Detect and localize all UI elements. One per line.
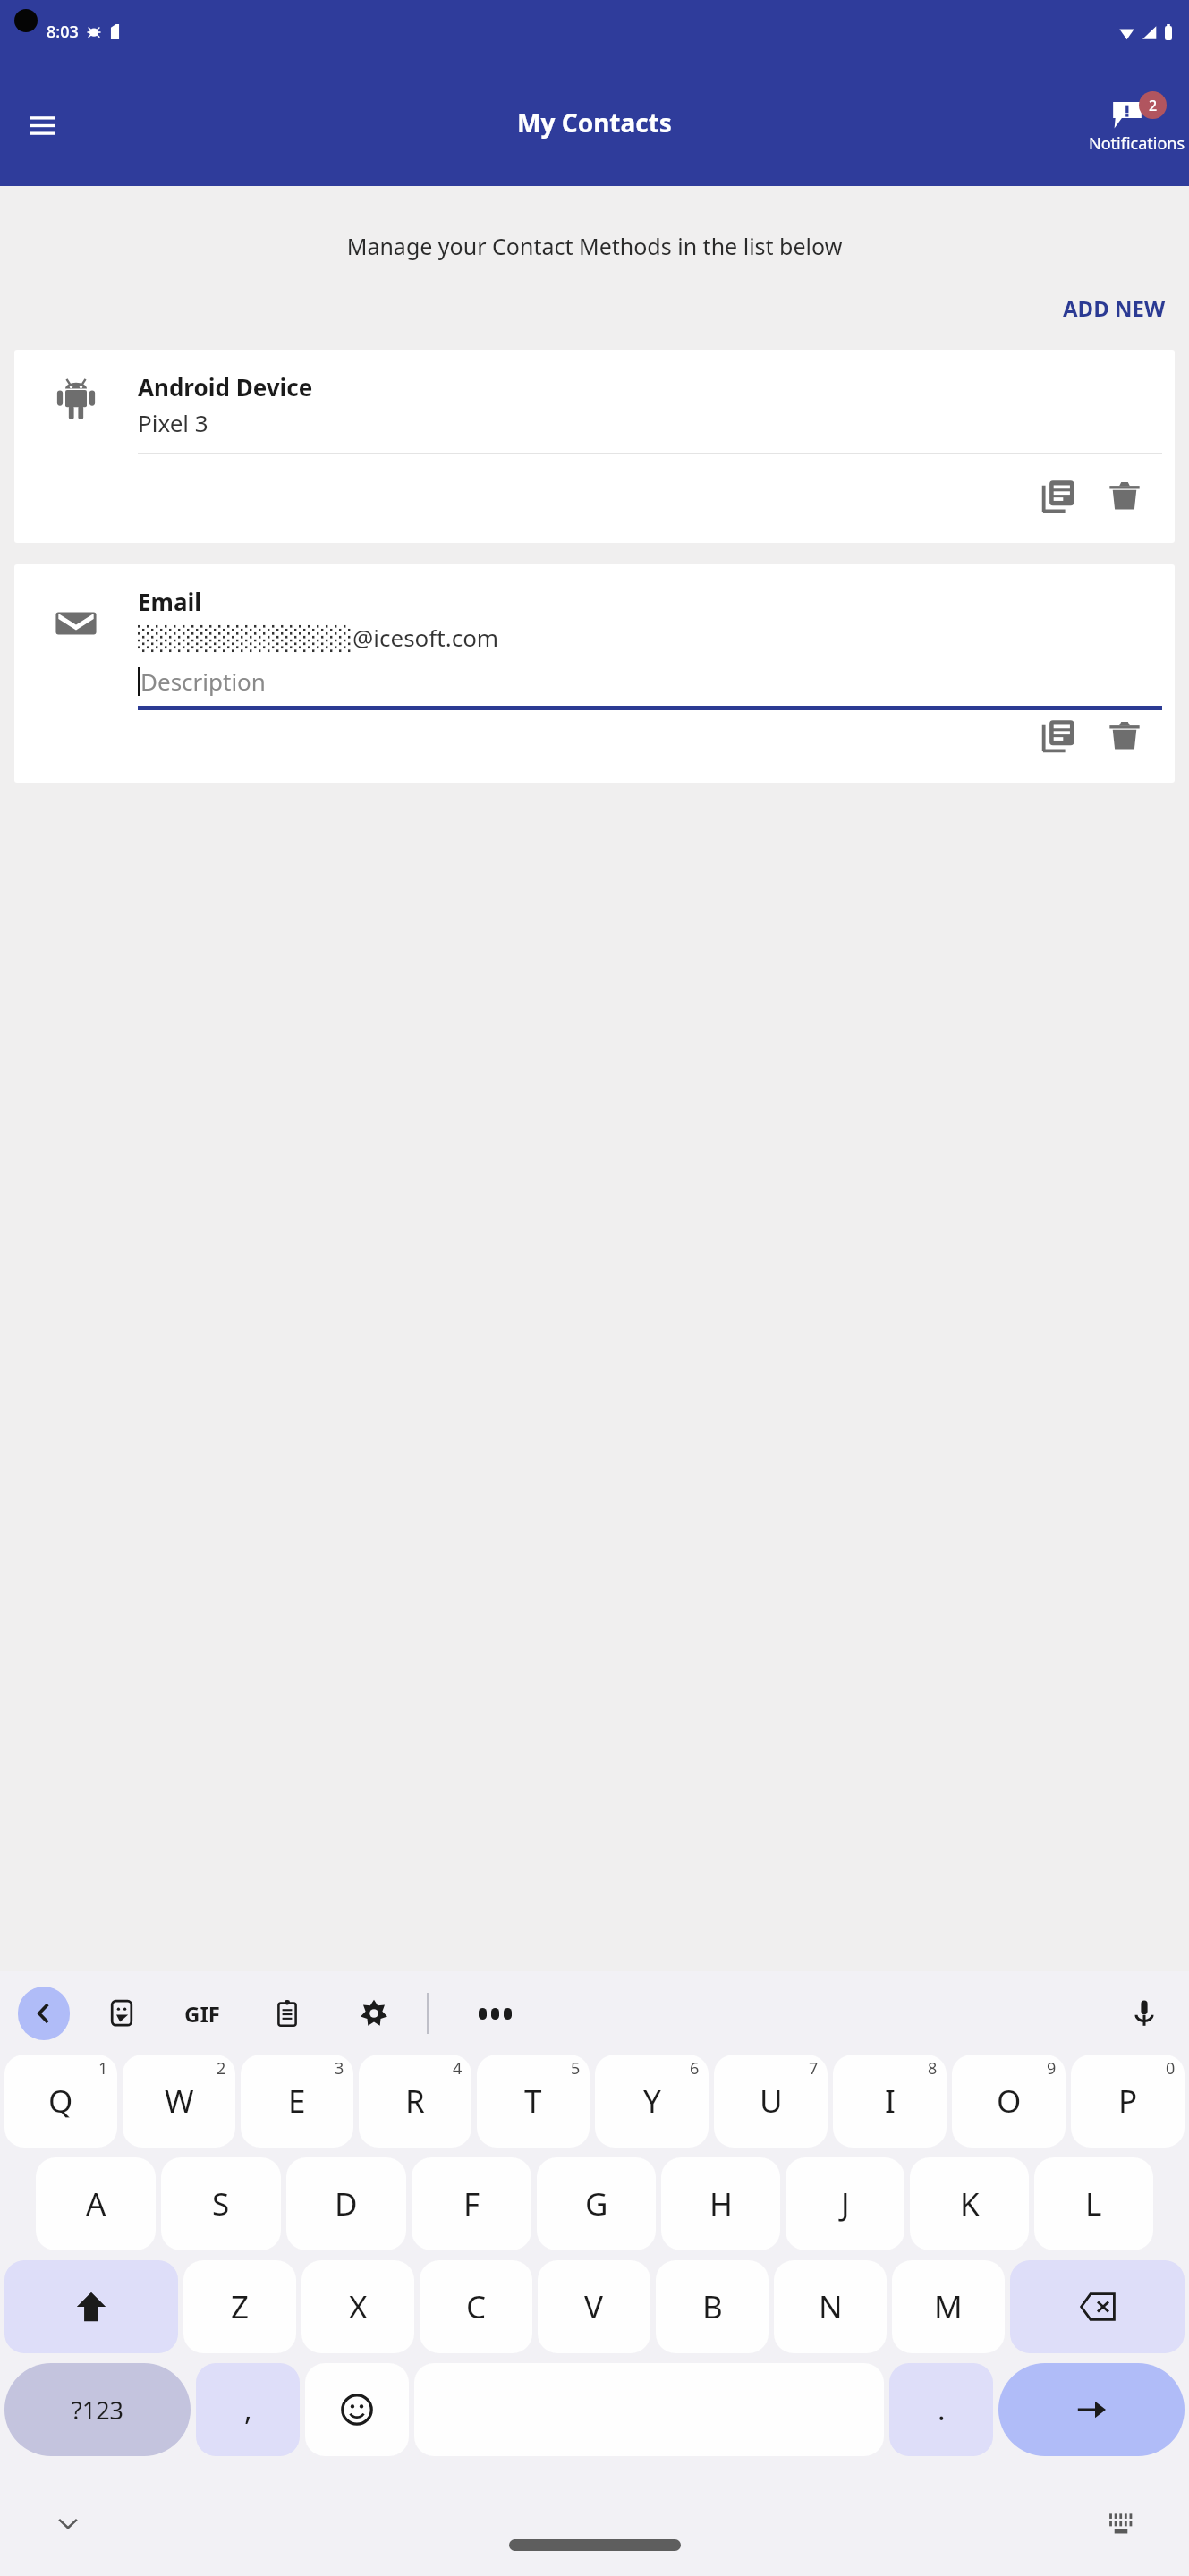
staticText: Description [140, 665, 266, 697]
button[interactable]: GIF [177, 1988, 227, 2038]
staticText: 0 [1166, 2057, 1176, 2080]
staticText: Android Device [138, 371, 313, 402]
button[interactable]: O [952, 2055, 1066, 2148]
staticText: A [86, 2182, 106, 2225]
button[interactable]: Shift [4, 2260, 178, 2353]
staticText: 4 [453, 2057, 463, 2080]
staticText: Pixel 3 [138, 407, 208, 438]
button[interactable]: Y [595, 2055, 709, 2148]
staticText: F [463, 2182, 480, 2225]
button[interactable]: ADD NEW [1040, 283, 1189, 334]
staticText: S [212, 2182, 230, 2225]
staticText: Email [138, 586, 202, 617]
button[interactable]: C [420, 2260, 532, 2353]
button[interactable]: Settings [349, 1988, 399, 2038]
button[interactable]: V [538, 2260, 650, 2353]
button[interactable]: H [661, 2157, 780, 2250]
button[interactable]: B [656, 2260, 769, 2353]
staticText: . [938, 2390, 946, 2429]
button[interactable]: R [359, 2055, 471, 2148]
staticText: Z [231, 2285, 250, 2328]
button[interactable]: S [161, 2157, 281, 2250]
staticText: Manage your Contact Methods in the list … [14, 231, 1175, 261]
staticText: D [335, 2182, 358, 2225]
button[interactable]: A [36, 2157, 156, 2250]
staticText: I [885, 2080, 896, 2123]
staticText: GIF [184, 1999, 220, 2029]
staticText: J [841, 2182, 850, 2225]
button[interactable]: 2 [1085, 96, 1189, 155]
button[interactable]: Email [14, 564, 1175, 783]
button[interactable]: Android Device [14, 350, 1175, 543]
button[interactable]: . [889, 2363, 993, 2456]
button[interactable]: N [774, 2260, 887, 2353]
staticText: 8 [928, 2057, 938, 2080]
button[interactable]: U [714, 2055, 828, 2148]
button[interactable]: F [412, 2157, 531, 2250]
button[interactable]: E [241, 2055, 353, 2148]
button[interactable]: G [537, 2157, 656, 2250]
button[interactable]: Copy [1033, 711, 1083, 761]
button[interactable]: Backspace [1010, 2260, 1185, 2353]
button[interactable]: W [123, 2055, 235, 2148]
staticText: N [819, 2285, 843, 2328]
button[interactable]: More options [470, 1988, 520, 2038]
staticText: 5 [571, 2057, 581, 2080]
staticText: W [165, 2080, 194, 2123]
staticText: G [585, 2182, 608, 2225]
staticText: E [288, 2080, 306, 2123]
staticText: H [709, 2182, 733, 2225]
staticText: R [405, 2080, 425, 2123]
staticText: 8:03 [47, 21, 79, 43]
button[interactable]: J [786, 2157, 904, 2250]
staticText: V [584, 2285, 604, 2328]
button[interactable]: Emoji [305, 2363, 409, 2456]
staticText: X [349, 2285, 368, 2328]
button[interactable]: Hide keyboard [43, 2498, 93, 2548]
button[interactable]: Clipboard [262, 1988, 312, 2038]
staticText: Q [48, 2080, 73, 2123]
staticText: Notifications [1089, 132, 1185, 155]
staticText: ADD NEW [1063, 293, 1166, 323]
button[interactable]: K [910, 2157, 1029, 2250]
button[interactable]: Enter [998, 2363, 1185, 2456]
staticText: U [760, 2080, 783, 2123]
staticText: C [466, 2285, 487, 2328]
button[interactable]: Delete [1100, 711, 1150, 761]
button[interactable]: Stickers [97, 1988, 147, 2038]
button[interactable]: Q [4, 2055, 117, 2148]
staticText: T [524, 2080, 542, 2123]
staticText: M [934, 2285, 963, 2328]
button[interactable]: , [196, 2363, 300, 2456]
staticText: L [1085, 2182, 1102, 2225]
staticText: 9 [1047, 2057, 1057, 2080]
staticText: P [1118, 2080, 1138, 2123]
staticText: ░░░░░░░░░░░░@icesoft.com [138, 622, 499, 653]
button[interactable]: D [286, 2157, 406, 2250]
button[interactable]: M [892, 2260, 1005, 2353]
staticText: 2 [217, 2057, 226, 2080]
button[interactable]: T [477, 2055, 590, 2148]
button[interactable]: P [1071, 2055, 1185, 2148]
staticText: , [244, 2390, 252, 2429]
button[interactable]: Back [18, 1987, 70, 2040]
button[interactable]: Change keyboard [1096, 2498, 1146, 2548]
button[interactable]: ?123 [4, 2363, 191, 2456]
button[interactable]: X [301, 2260, 414, 2353]
staticText: Y [643, 2080, 661, 2123]
staticText: 2 [1149, 96, 1158, 115]
button[interactable]: Voice input [1119, 1988, 1169, 2038]
button[interactable]: Z [183, 2260, 296, 2353]
button[interactable]: I [833, 2055, 947, 2148]
staticText: 1 [98, 2057, 108, 2080]
staticText: B [702, 2285, 723, 2328]
staticText: 3 [335, 2057, 344, 2080]
staticText: O [997, 2080, 1022, 2123]
button[interactable]: L [1034, 2157, 1153, 2250]
staticText: 6 [690, 2057, 700, 2080]
button[interactable]: Open navigation menu [18, 100, 68, 150]
button[interactable]: Delete [1100, 471, 1150, 521]
staticText: K [960, 2182, 980, 2225]
button[interactable]: Copy [1033, 471, 1083, 521]
